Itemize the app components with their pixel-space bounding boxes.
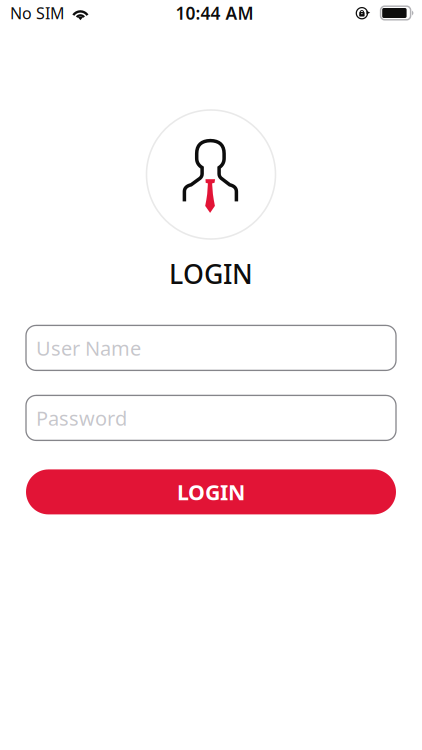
- staticText: User Name: [36, 335, 141, 361]
- button[interactable]: Password: [26, 395, 396, 440]
- staticText: LOGIN: [177, 478, 245, 506]
- staticText: Password: [36, 405, 127, 431]
- staticText: No SIM: [10, 2, 65, 24]
- staticText: 10:44 AM: [175, 1, 253, 24]
- staticText: LOGIN: [169, 256, 253, 291]
- button[interactable]: LOGIN: [26, 469, 396, 514]
- button[interactable]: User Name: [26, 325, 396, 370]
